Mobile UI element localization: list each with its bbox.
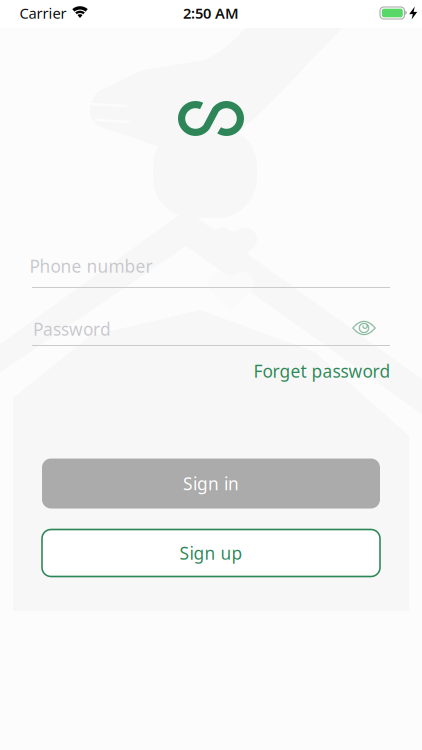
staticText: Sign in: [183, 472, 239, 495]
button[interactable]: Forget password: [253, 359, 390, 382]
staticText: Sign up: [179, 541, 242, 564]
staticText: 2:50 AM: [183, 3, 239, 23]
staticText: Carrier: [19, 3, 66, 23]
button[interactable]: Show password: [352, 321, 376, 335]
staticText: Phone number: [29, 254, 152, 277]
button[interactable]: Sign up: [42, 529, 380, 576]
staticText: Forget password: [253, 359, 390, 382]
staticText: Password: [33, 317, 111, 340]
button[interactable]: Sign in: [42, 458, 380, 508]
